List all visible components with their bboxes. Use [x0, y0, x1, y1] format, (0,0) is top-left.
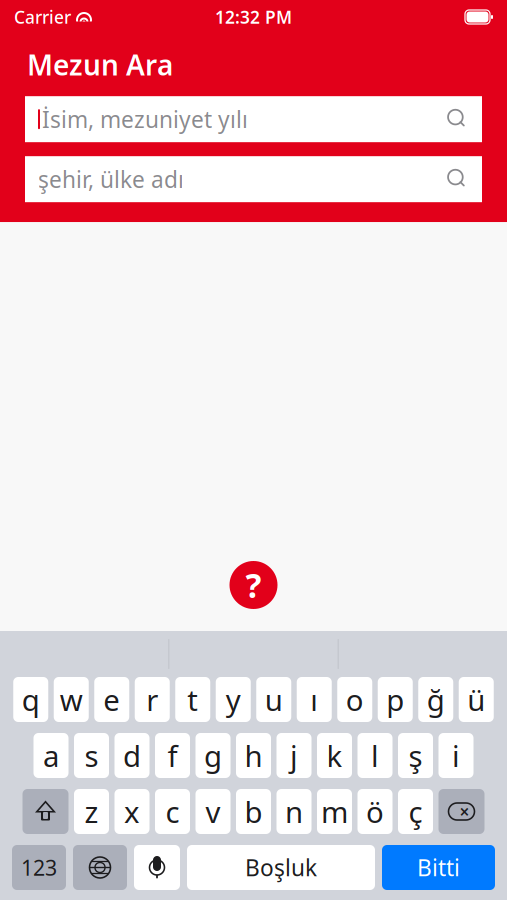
button[interactable]: h [236, 733, 271, 778]
staticText: ı [310, 680, 318, 719]
staticText: × [459, 800, 469, 823]
staticText: q [22, 680, 40, 719]
button[interactable]: şehir, ülke adı [25, 156, 482, 202]
staticText: şehir, ülke adı [38, 164, 184, 194]
staticText: x [124, 792, 140, 831]
staticText: u [265, 680, 283, 719]
button[interactable]: Next keyboard [73, 845, 127, 890]
button[interactable]: ç [398, 789, 433, 834]
button[interactable]: m [317, 789, 352, 834]
button[interactable]: Shift [22, 789, 68, 834]
button[interactable]: İsim, mezuniyet yılı [25, 96, 482, 142]
button[interactable]: Bitti [382, 845, 495, 890]
staticText: v [205, 792, 220, 831]
button[interactable]: z [74, 789, 109, 834]
staticText: w [60, 680, 83, 719]
button[interactable]: l [357, 733, 392, 778]
button[interactable]: o [337, 677, 372, 722]
staticText: d [123, 736, 141, 775]
staticText: Mezun Ara [27, 46, 173, 83]
button[interactable]: u [256, 677, 291, 722]
button[interactable]: Help [229, 561, 277, 609]
staticText: Bitti [417, 852, 460, 882]
button[interactable]: b [236, 789, 271, 834]
staticText: s [84, 736, 98, 775]
button[interactable]: Boşluk [187, 845, 375, 890]
staticText: m [321, 792, 348, 831]
staticText: i [452, 736, 460, 775]
button[interactable]: ı [297, 677, 332, 722]
staticText: ğ [427, 680, 445, 719]
button[interactable]: a [33, 733, 68, 778]
button[interactable]: e [94, 677, 129, 722]
staticText: 123 [21, 853, 57, 882]
staticText: k [326, 736, 342, 775]
button[interactable]: p [378, 677, 413, 722]
staticText: ö [366, 792, 384, 831]
button[interactable]: r [135, 677, 170, 722]
button[interactable]: ö [357, 789, 392, 834]
button[interactable]: n [276, 789, 311, 834]
button[interactable]: y [216, 677, 251, 722]
staticText: g [204, 736, 222, 775]
staticText: y [226, 680, 241, 719]
button[interactable]: v [195, 789, 230, 834]
staticText: ç [408, 792, 422, 831]
button[interactable]: f [155, 733, 190, 778]
staticText: e [103, 680, 120, 719]
staticText: o [346, 680, 364, 719]
staticText: ? [245, 563, 261, 607]
staticText: r [146, 680, 158, 719]
staticText: a [43, 736, 59, 775]
button[interactable]: ü [459, 677, 494, 722]
button[interactable]: c [155, 789, 190, 834]
button[interactable]: ş [398, 733, 433, 778]
staticText: h [244, 736, 262, 775]
button[interactable]: j [276, 733, 311, 778]
staticText: n [285, 792, 303, 831]
button[interactable]: g [195, 733, 230, 778]
button[interactable]: w [54, 677, 89, 722]
button[interactable]: t [175, 677, 210, 722]
staticText: c [165, 792, 179, 831]
staticText: f [167, 736, 177, 775]
staticText: İsim, mezuniyet yılı [42, 104, 248, 134]
staticText: 12:32 PM [215, 5, 292, 28]
staticText: p [386, 680, 404, 719]
button[interactable]: x [114, 789, 149, 834]
staticText: z [84, 792, 98, 831]
staticText: ü [467, 680, 485, 719]
button[interactable]: ğ [418, 677, 453, 722]
staticText: ş [408, 736, 422, 775]
button[interactable]: Dictation [134, 845, 180, 890]
staticText: l [371, 736, 379, 775]
button[interactable]: d [114, 733, 149, 778]
button[interactable]: s [74, 733, 109, 778]
staticText: b [244, 792, 262, 831]
staticText: Carrier [14, 5, 71, 28]
button[interactable]: i [438, 733, 473, 778]
staticText: t [187, 680, 198, 719]
staticText: Boşluk [245, 852, 317, 882]
button[interactable]: Delete [438, 789, 484, 834]
staticText: j [290, 736, 298, 775]
button[interactable]: q [13, 677, 48, 722]
button[interactable]: 123 [12, 845, 66, 890]
button[interactable]: k [317, 733, 352, 778]
